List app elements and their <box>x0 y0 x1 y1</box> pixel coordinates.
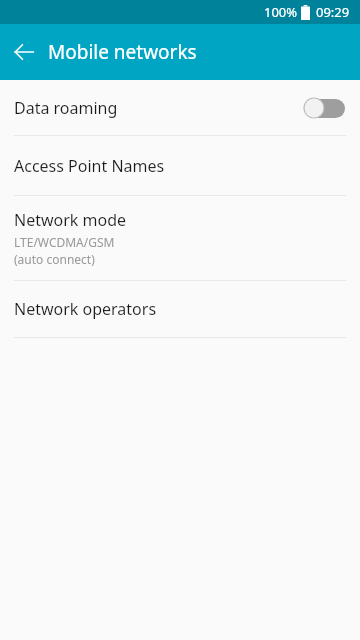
staticText: 100% <box>264 3 298 21</box>
button[interactable]: Network operators <box>0 281 360 337</box>
staticText: Access Point Names <box>14 155 165 177</box>
staticText: (auto connect) <box>14 251 95 267</box>
button[interactable]: Access Point Names <box>0 136 360 195</box>
staticText: Data roaming <box>14 97 303 119</box>
button[interactable]: Network mode <box>0 196 360 280</box>
staticText: Network operators <box>14 298 157 320</box>
button[interactable]: Data roaming <box>0 80 360 135</box>
button[interactable]: Back <box>6 34 42 70</box>
staticText: LTE/WCDMA/GSM <box>14 234 115 250</box>
button[interactable]: Data roaming toggle, off <box>303 97 345 119</box>
staticText: 09:29 <box>316 3 350 21</box>
staticText: Mobile networks <box>48 39 197 65</box>
staticText: Network mode <box>14 209 127 231</box>
